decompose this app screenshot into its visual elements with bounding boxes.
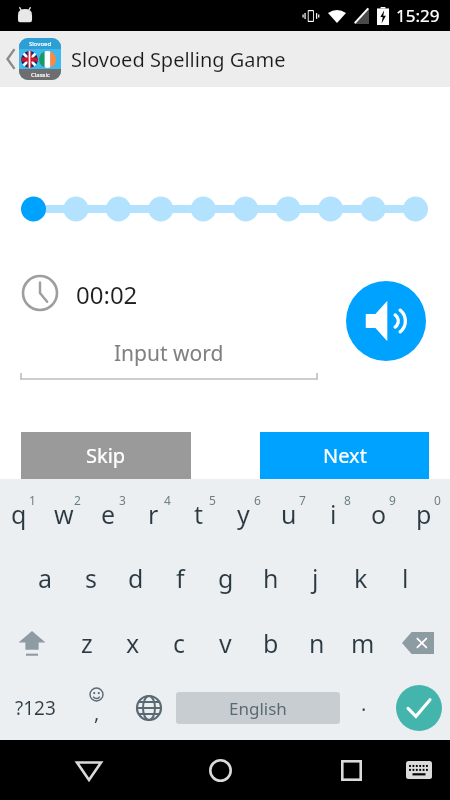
staticText: 4 (164, 492, 171, 508)
button[interactable]: m (340, 610, 386, 675)
other: Back (4, 46, 18, 72)
button[interactable]: r (135, 479, 180, 545)
staticText: c (173, 626, 186, 660)
button[interactable]: j (293, 545, 338, 610)
staticText: m (351, 626, 375, 660)
button[interactable]: u (270, 479, 315, 545)
button[interactable]: Skip (21, 432, 191, 479)
button[interactable]: p (405, 479, 450, 545)
staticText: z (81, 626, 93, 660)
button[interactable]: ?123 (0, 675, 70, 740)
staticText: Skip (86, 442, 126, 469)
button[interactable]: Switch keyboard (396, 747, 442, 793)
staticText: x (126, 626, 140, 660)
button[interactable]: l (383, 545, 428, 610)
staticText: 15:29 (396, 4, 440, 27)
button[interactable]: v (202, 610, 248, 675)
button[interactable]: Enter (396, 685, 442, 731)
button[interactable]: Play sound (346, 281, 426, 361)
button[interactable]: Next (260, 432, 429, 479)
staticText: Classic (31, 71, 50, 79)
button[interactable]: a (22, 545, 68, 610)
button[interactable]: f (158, 545, 203, 610)
button[interactable]: s (68, 545, 113, 610)
button[interactable]: w (45, 479, 90, 545)
staticText: b (263, 626, 279, 660)
button[interactable]: b (248, 610, 294, 675)
button[interactable]: Emoji and comma (70, 675, 122, 740)
staticText: 2 (74, 492, 81, 508)
staticText: e (101, 497, 116, 531)
staticText: s (85, 561, 97, 595)
button[interactable]: Home (197, 747, 243, 793)
staticText: 7 (299, 492, 306, 508)
button[interactable]: Shift (0, 610, 64, 675)
staticText: 6 (254, 492, 261, 508)
staticText: 3 (119, 492, 126, 508)
button[interactable]: d (113, 545, 158, 610)
staticText: 8 (344, 492, 351, 508)
staticText: u (281, 497, 297, 531)
staticText: 5 (209, 492, 216, 508)
staticText: h (263, 561, 279, 595)
button[interactable]: z (64, 610, 110, 675)
button[interactable]: h (248, 545, 293, 610)
staticText: Slovoed Spelling Game (71, 46, 286, 73)
staticText: Slovoed (29, 40, 52, 48)
staticText: k (354, 561, 368, 595)
staticText: Input word (114, 339, 224, 368)
staticText: , (94, 699, 100, 726)
staticText: p (416, 497, 432, 531)
button[interactable]: i (315, 479, 360, 545)
button[interactable]: g (203, 545, 248, 610)
button[interactable]: q (0, 479, 45, 545)
button[interactable]: y (225, 479, 270, 545)
button[interactable]: . (340, 675, 388, 740)
staticText: ?123 (15, 695, 56, 721)
staticText: Next (323, 442, 367, 469)
staticText: j (312, 561, 319, 595)
staticText: w (54, 497, 74, 531)
button[interactable]: Back (0, 31, 450, 87)
staticText: . (361, 690, 367, 717)
staticText: i (330, 497, 337, 531)
staticText: 9 (389, 492, 396, 508)
button[interactable]: c (156, 610, 202, 675)
button[interactable]: English (176, 692, 340, 724)
staticText: v (219, 626, 232, 660)
staticText: g (218, 561, 234, 595)
staticText: d (128, 561, 144, 595)
staticText: l (402, 561, 409, 595)
button[interactable]: t (180, 479, 225, 545)
staticText: n (309, 626, 325, 660)
button[interactable]: e (90, 479, 135, 545)
staticText: f (176, 561, 185, 595)
staticText: y (237, 497, 250, 531)
button[interactable]: Input word (20, 339, 318, 381)
staticText: a (38, 561, 53, 595)
staticText: q (11, 497, 27, 531)
staticText: r (148, 497, 159, 531)
staticText: o (371, 497, 387, 531)
staticText: English (229, 697, 287, 720)
button[interactable]: k (338, 545, 383, 610)
button[interactable]: o (360, 479, 405, 545)
staticText: 00:02 (76, 278, 138, 311)
button[interactable]: n (294, 610, 340, 675)
button[interactable]: Change language (122, 675, 176, 740)
staticText: 1 (29, 492, 36, 508)
button[interactable]: Backspace (386, 610, 450, 675)
button[interactable]: Recent apps (328, 747, 374, 793)
staticText: 0 (434, 492, 441, 508)
button[interactable]: x (110, 610, 156, 675)
staticText: t (194, 497, 204, 531)
button[interactable]: Back (66, 747, 112, 793)
